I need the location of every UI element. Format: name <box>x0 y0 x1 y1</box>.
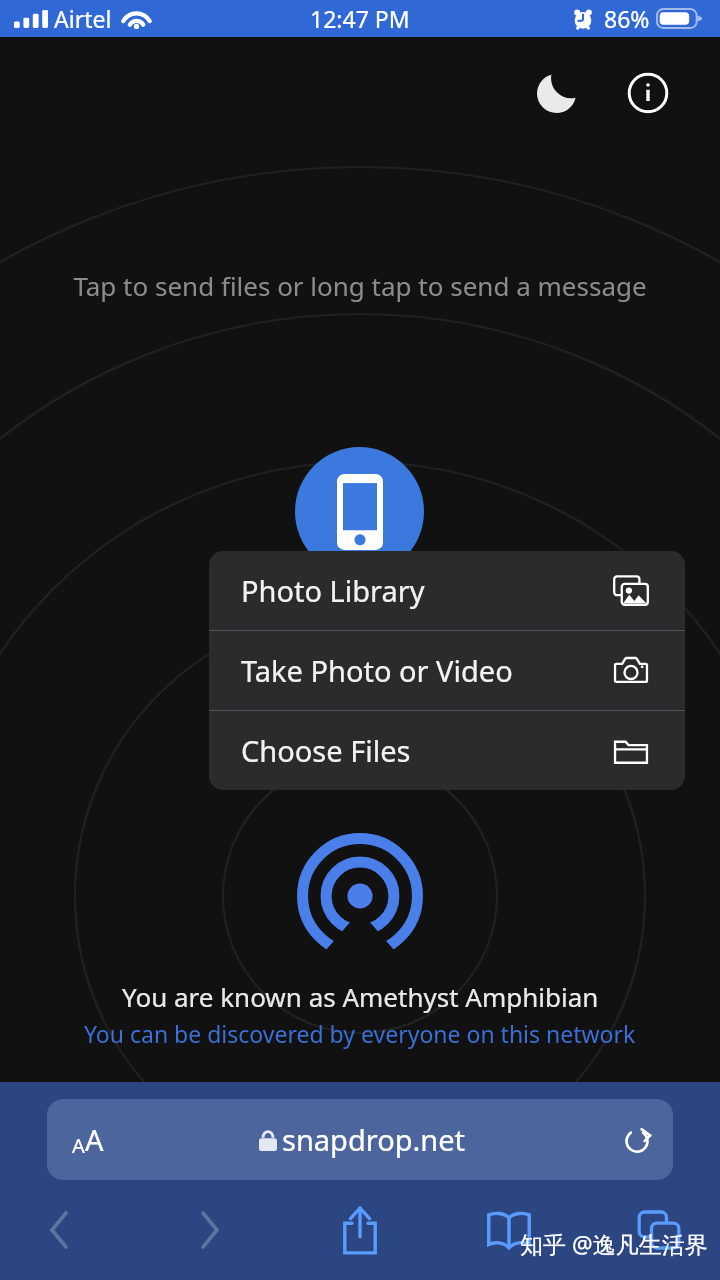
staticText: 86% <box>604 3 650 34</box>
button[interactable]: Take Photo or Video <box>209 631 685 710</box>
staticText: Photo Library <box>241 571 425 610</box>
button[interactable]: Bookmarks <box>479 1200 539 1260</box>
button[interactable]: Forward <box>180 1200 240 1260</box>
staticText: Tap to send files or long tap to send a … <box>73 268 647 303</box>
button[interactable]: Back <box>29 1200 89 1260</box>
button[interactable]: Info <box>622 67 674 119</box>
staticText: Choose Files <box>241 731 411 770</box>
staticText: You can be discovered by everyone on thi… <box>84 1018 636 1049</box>
staticText: Airtel <box>54 3 112 34</box>
button[interactable]: A <box>47 1099 673 1180</box>
staticText: 12:47 PM <box>310 3 410 34</box>
staticText: snapdrop.net <box>282 1120 466 1159</box>
staticText: 知乎 @逸凡生活界 <box>520 1228 708 1259</box>
staticText: You are known as Amethyst Amphibian <box>122 979 599 1014</box>
staticText: A <box>85 1120 104 1159</box>
button[interactable]: Share <box>330 1200 390 1260</box>
button[interactable]: Dark mode <box>530 67 582 119</box>
button[interactable]: Peer device <box>295 447 424 576</box>
button[interactable]: Tabs <box>629 1200 689 1260</box>
button[interactable]: Choose Files <box>209 711 685 790</box>
staticText: Take Photo or Video <box>241 651 513 690</box>
button[interactable]: Photo Library <box>209 551 685 630</box>
staticText: A <box>72 1132 85 1159</box>
